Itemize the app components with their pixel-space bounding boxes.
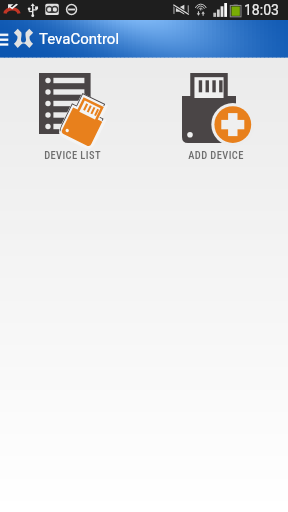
- button[interactable]: Open navigation drawer: [0, 20, 11, 57]
- staticText: TevaControl: [39, 30, 120, 48]
- staticText: ADD DEVICE: [188, 149, 244, 161]
- staticText: 18:03: [244, 2, 279, 18]
- staticText: DEVICE LIST: [44, 149, 101, 161]
- button[interactable]: ADD DEVICE: [160, 57, 272, 161]
- button[interactable]: DEVICE LIST: [16, 57, 128, 161]
